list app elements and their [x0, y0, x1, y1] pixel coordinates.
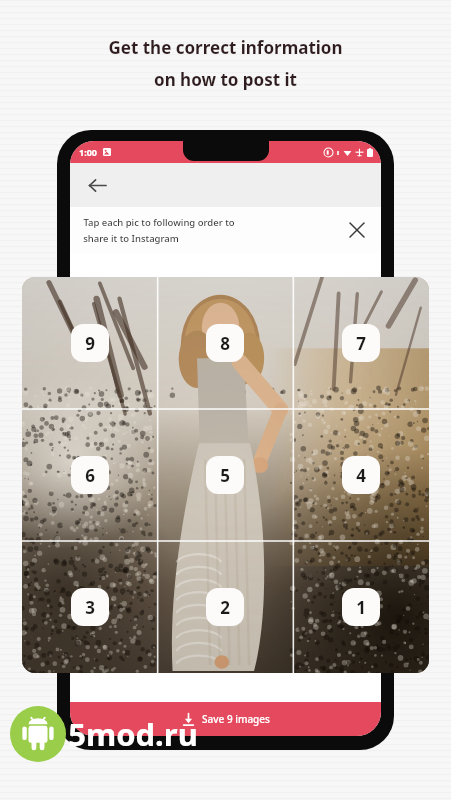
staticText: 5mod.ru — [68, 713, 198, 755]
staticText: 6 — [85, 464, 95, 487]
button[interactable]: 8 — [157, 277, 293, 409]
button[interactable]: 6 — [22, 409, 157, 541]
button[interactable]: Save 9 images — [70, 702, 381, 736]
staticText: on how to post it — [154, 68, 297, 91]
button[interactable]: 9 — [22, 277, 157, 409]
button[interactable]: 4 — [293, 409, 429, 541]
staticText: 9 — [85, 332, 95, 355]
staticText: 5 — [220, 464, 230, 487]
staticText: 7 — [356, 332, 366, 355]
button[interactable]: 2 — [157, 541, 293, 673]
staticText: 2 — [220, 596, 230, 619]
staticText: 8 — [220, 332, 230, 355]
button[interactable]: 7 — [293, 277, 429, 409]
staticText: Tap each pic to following order to — [83, 216, 235, 229]
button[interactable]: 5 — [157, 409, 293, 541]
staticText: Save 9 images — [202, 712, 270, 726]
staticText: Get the correct information — [108, 36, 343, 59]
staticText: 1 — [356, 596, 366, 619]
staticText: 1:00 — [79, 146, 97, 158]
button[interactable]: Close — [342, 215, 372, 245]
staticText: 4 — [356, 464, 366, 487]
button[interactable]: 3 — [22, 541, 157, 673]
staticText: 3 — [85, 596, 95, 619]
staticText: share it to Instagram — [83, 232, 179, 245]
button[interactable]: 1 — [293, 541, 429, 673]
button[interactable]: Back — [80, 168, 114, 202]
